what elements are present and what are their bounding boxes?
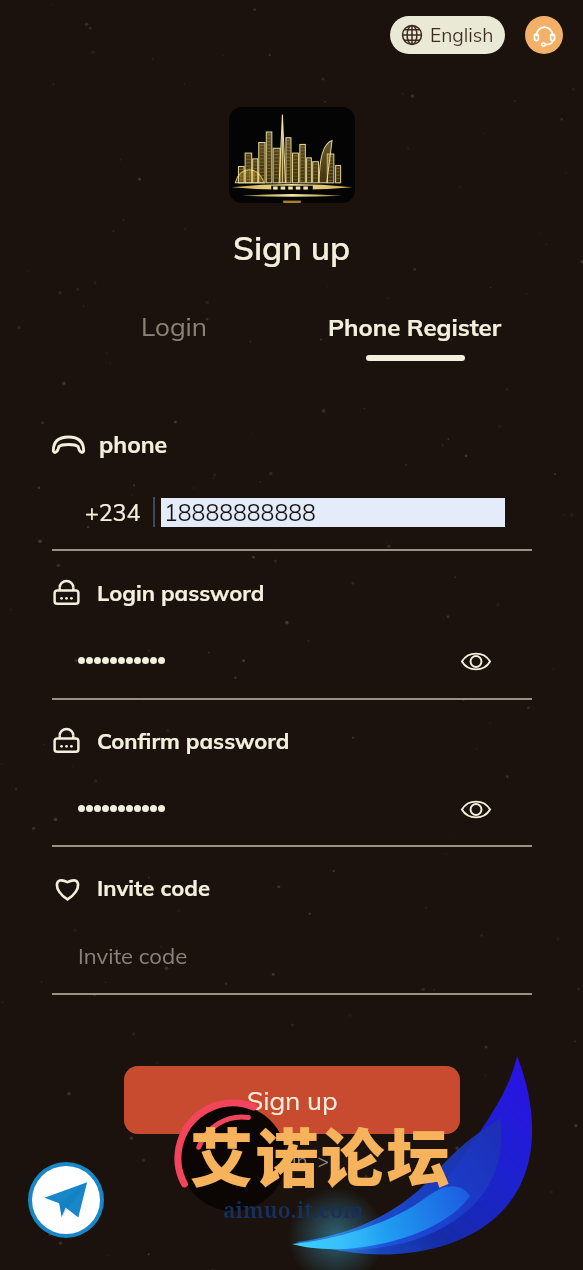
staticText: Invite code (78, 942, 188, 970)
staticText: 18888888888 (164, 498, 316, 527)
staticText: Sign up (233, 227, 351, 268)
button[interactable]: Phone Register (322, 306, 508, 367)
staticText: Confirm password (97, 727, 290, 755)
staticText: Phone Register (328, 312, 502, 342)
button[interactable]: Show password (455, 640, 497, 682)
button[interactable]: Show password (455, 788, 497, 830)
staticText: Login password (97, 579, 265, 607)
button[interactable]: Customer support (525, 16, 563, 54)
button[interactable]: Invite code (78, 942, 188, 970)
button[interactable]: 18888888888 (161, 498, 505, 527)
staticText: Sign up (247, 1084, 338, 1117)
staticText: Login (141, 310, 207, 343)
staticText: 艾诺论坛 (190, 1108, 452, 1199)
button[interactable]: English (390, 16, 505, 54)
staticText: aimuo.it.com (223, 1196, 364, 1225)
button[interactable]: Telegram (32, 1166, 100, 1234)
button[interactable]: Sign in > (244, 1145, 333, 1177)
staticText: Invite code (97, 874, 211, 902)
staticText: phone (99, 430, 168, 459)
staticText: +234 (85, 498, 141, 527)
button[interactable]: Sign up (124, 1066, 460, 1134)
staticText: Sign in > (248, 1149, 329, 1173)
staticText: English (430, 23, 494, 47)
button[interactable]: Login (135, 304, 213, 349)
